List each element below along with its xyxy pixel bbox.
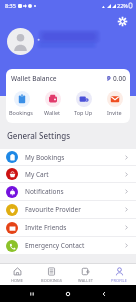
staticText: Top Up bbox=[74, 109, 93, 116]
other: Recents bbox=[28, 290, 36, 298]
staticText: Invite bbox=[107, 109, 122, 116]
staticText: ₱ bbox=[107, 74, 111, 83]
staticText: General Settings bbox=[7, 130, 71, 141]
button[interactable]: Invite Friends bbox=[0, 219, 136, 236]
button[interactable]: My Bookings bbox=[0, 149, 136, 165]
staticText: BOOKINGS bbox=[41, 278, 62, 283]
button[interactable]: Bookings bbox=[6, 91, 37, 116]
staticText: Wallet Balance bbox=[11, 74, 57, 83]
button[interactable]: Settings bbox=[116, 15, 129, 28]
button[interactable]: Top Up bbox=[68, 91, 99, 116]
other: Home bbox=[64, 290, 72, 298]
staticText: Wallet bbox=[44, 109, 61, 116]
staticText: Invite Friends bbox=[25, 223, 67, 232]
staticText: Bookings bbox=[9, 109, 34, 116]
button[interactable]: WALLET bbox=[68, 264, 102, 285]
button[interactable]: Profile photo bbox=[7, 28, 34, 55]
button[interactable]: My Cart bbox=[0, 166, 136, 182]
staticText: PROFILE bbox=[111, 278, 127, 283]
staticText: 0.00 bbox=[113, 74, 126, 83]
staticText: My Bookings bbox=[25, 153, 65, 162]
button[interactable]: Invite bbox=[99, 91, 130, 116]
button[interactable]: Notifications bbox=[0, 183, 136, 200]
button[interactable]: Emergency Contact bbox=[0, 237, 136, 254]
staticText: WALLET bbox=[78, 278, 93, 283]
staticText: Notifications bbox=[25, 187, 64, 196]
staticText: Favourite Provider bbox=[25, 205, 81, 214]
staticText: Emergency Contact bbox=[25, 241, 85, 250]
button[interactable]: BOOKINGS bbox=[34, 264, 68, 285]
staticText: My Cart bbox=[25, 170, 49, 179]
staticText: 22% bbox=[117, 2, 128, 9]
button[interactable]: HOME bbox=[0, 264, 34, 285]
staticText: HOME bbox=[11, 278, 23, 283]
button[interactable]: Favourite Provider bbox=[0, 201, 136, 218]
staticText: 8:35 bbox=[5, 2, 16, 9]
button[interactable]: Wallet bbox=[37, 91, 68, 116]
button[interactable]: PROFILE bbox=[102, 264, 136, 285]
other: Back bbox=[100, 290, 108, 298]
